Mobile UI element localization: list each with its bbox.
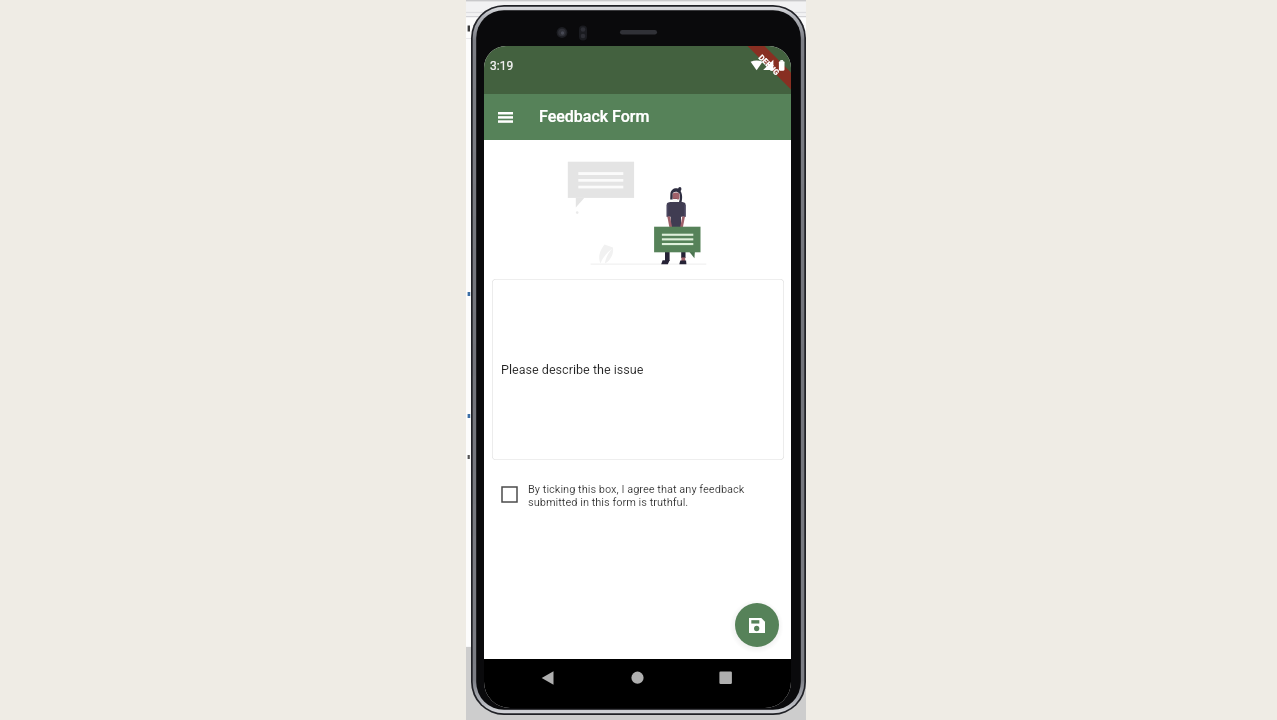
button[interactable]: Save feedback xyxy=(735,603,779,647)
staticText: 3:19 xyxy=(490,59,514,73)
staticText: DEBUG xyxy=(757,53,781,78)
button[interactable]: Open navigation menu xyxy=(489,101,521,133)
staticText: Please describe the issue xyxy=(501,362,644,377)
button[interactable]: Please describe the issue xyxy=(492,279,784,460)
staticText: Feedback Form xyxy=(539,107,650,126)
staticText: By ticking this box, I agree that any fe… xyxy=(528,483,754,509)
button[interactable]: By ticking this box, I agree that any fe… xyxy=(502,483,754,511)
